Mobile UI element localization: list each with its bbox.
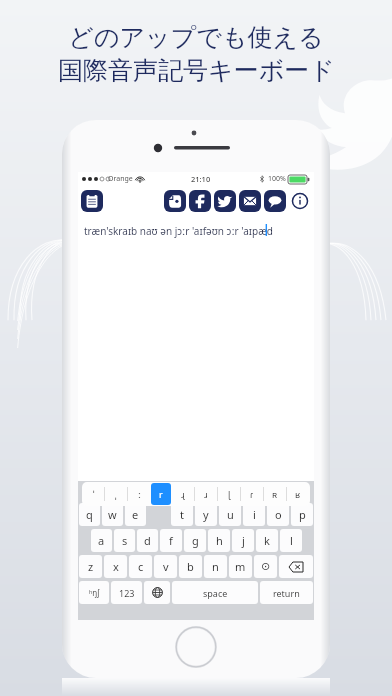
staticText: d bbox=[144, 533, 151, 548]
button[interactable]: ɻ bbox=[173, 483, 193, 505]
staticText: e bbox=[132, 507, 139, 522]
button[interactable]: o bbox=[267, 503, 289, 526]
staticText: c bbox=[138, 559, 144, 574]
button[interactable]: Switch keyboard bbox=[144, 581, 170, 604]
button[interactable]: b bbox=[179, 555, 202, 578]
staticText: f bbox=[169, 533, 173, 548]
staticText: t bbox=[180, 507, 184, 522]
button[interactable]: w bbox=[102, 503, 123, 526]
staticText: ˈ bbox=[93, 488, 95, 500]
staticText: ɾ bbox=[250, 488, 254, 500]
button[interactable]: j bbox=[232, 529, 254, 552]
button[interactable]: s bbox=[114, 529, 135, 552]
button[interactable]: x bbox=[104, 555, 127, 578]
button[interactable]: ʀ bbox=[265, 483, 285, 505]
staticText: 123 bbox=[119, 587, 135, 599]
button[interactable]: t bbox=[171, 503, 193, 526]
staticText: s bbox=[122, 533, 128, 548]
button[interactable]: y bbox=[195, 503, 217, 526]
button[interactable]: space bbox=[172, 581, 258, 604]
staticText: w bbox=[108, 507, 117, 522]
staticText: ⊙ bbox=[261, 560, 271, 573]
button[interactable]: Twitter bbox=[214, 190, 236, 212]
staticText: space bbox=[203, 587, 228, 599]
staticText: ʀ bbox=[272, 488, 278, 500]
staticText: r bbox=[159, 488, 163, 500]
staticText: n bbox=[212, 559, 219, 574]
staticText: ʁ bbox=[295, 488, 301, 500]
button[interactable]: n bbox=[204, 555, 227, 578]
staticText: ʰŋʃ bbox=[89, 587, 100, 598]
button[interactable]: Home bbox=[175, 626, 217, 668]
button[interactable]: Evernote bbox=[164, 190, 186, 212]
staticText: p bbox=[299, 507, 306, 522]
staticText: y bbox=[203, 507, 209, 522]
button[interactable]: Facebook bbox=[189, 190, 211, 212]
staticText: i bbox=[253, 507, 256, 522]
staticText: return bbox=[273, 587, 300, 599]
staticText: l bbox=[290, 533, 293, 548]
staticText: z bbox=[88, 559, 94, 574]
staticText: 国際音声記号キーボード bbox=[58, 55, 335, 86]
staticText: q bbox=[86, 507, 93, 522]
staticText: v bbox=[163, 559, 169, 574]
button[interactable]: ʰŋʃ bbox=[79, 581, 109, 604]
button[interactable]: Message bbox=[264, 190, 286, 212]
button[interactable]: i bbox=[243, 503, 265, 526]
button[interactable]: ⊙ bbox=[254, 555, 277, 578]
staticText: ˌ bbox=[115, 488, 117, 500]
button[interactable]: c bbox=[129, 555, 152, 578]
staticText: m bbox=[235, 559, 246, 574]
staticText: ɻ bbox=[181, 488, 185, 500]
staticText: o bbox=[275, 507, 282, 522]
button[interactable]: ɭ bbox=[219, 483, 239, 505]
staticText: 100% bbox=[268, 174, 286, 184]
staticText: u bbox=[227, 507, 234, 522]
staticText: k bbox=[264, 533, 270, 548]
staticText: j bbox=[242, 533, 245, 548]
button[interactable]: h bbox=[208, 529, 230, 552]
button[interactable]: v bbox=[154, 555, 177, 578]
button[interactable]: m bbox=[229, 555, 252, 578]
button[interactable]: ˈ bbox=[84, 483, 103, 505]
button[interactable]: return bbox=[260, 581, 313, 604]
button[interactable]: a bbox=[91, 529, 112, 552]
button[interactable]: ɹ bbox=[196, 483, 216, 505]
button[interactable]: u bbox=[219, 503, 241, 526]
button[interactable]: l bbox=[280, 529, 302, 552]
button[interactable]: Backspace bbox=[279, 555, 313, 578]
button[interactable]: ː bbox=[129, 483, 149, 505]
button[interactable]: ˌ bbox=[106, 483, 126, 505]
button[interactable]: f bbox=[160, 529, 182, 552]
staticText: g bbox=[192, 533, 199, 548]
button[interactable]: d bbox=[137, 529, 158, 552]
button[interactable]: e bbox=[125, 503, 146, 526]
staticText: x bbox=[113, 559, 119, 574]
staticText: 21:10 bbox=[191, 174, 211, 184]
staticText: Orange bbox=[108, 174, 133, 184]
staticText: b bbox=[187, 559, 194, 574]
button[interactable]: Mail bbox=[239, 190, 261, 212]
button[interactable]: Info bbox=[289, 190, 311, 212]
button[interactable]: ɾ bbox=[242, 483, 262, 505]
staticText: h bbox=[216, 533, 223, 548]
button[interactable]: k bbox=[256, 529, 278, 552]
staticText: ɭ bbox=[228, 488, 231, 500]
staticText: どのアップでも使える bbox=[68, 22, 324, 53]
staticText: a bbox=[98, 533, 105, 548]
button[interactable]: q bbox=[79, 503, 100, 526]
button[interactable]: 123 bbox=[111, 581, 142, 604]
staticText: ɹ bbox=[204, 488, 208, 500]
staticText: ː bbox=[138, 488, 141, 500]
button[interactable]: ʁ bbox=[288, 483, 308, 505]
button[interactable]: Clipboard bbox=[81, 190, 103, 212]
button[interactable]: g bbox=[184, 529, 206, 552]
button[interactable]: z bbox=[79, 555, 102, 578]
button[interactable]: p bbox=[291, 503, 313, 526]
staticText: træn'skraɪb naʊ ən jɔːr 'aɪfəʊn ɔːr 'aɪp… bbox=[84, 224, 276, 238]
button[interactable]: r bbox=[151, 483, 171, 505]
